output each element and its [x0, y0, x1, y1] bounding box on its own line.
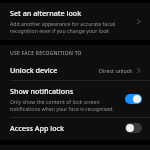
button[interactable]: Access App lock	[0, 118, 150, 138]
button[interactable]: Show notifications	[0, 81, 150, 117]
staticText: USE FACE RECOGNITION TO	[10, 50, 82, 57]
staticText: Set an alternate look	[10, 8, 82, 18]
staticText: Unlock device	[10, 65, 99, 75]
button[interactable]: Access App lock	[125, 123, 142, 133]
button[interactable]: Show notifications	[125, 94, 142, 104]
staticText: Direct unlock	[99, 67, 133, 74]
staticText: Show notifications	[10, 86, 74, 96]
button[interactable]: Unlock device	[0, 63, 150, 80]
staticText: Add another appearance for accurate faci…	[10, 20, 116, 34]
staticText: Only show the content of lock screen not…	[10, 98, 114, 112]
button[interactable]: Set an alternate look	[0, 3, 150, 40]
staticText: Access App lock	[10, 123, 125, 133]
